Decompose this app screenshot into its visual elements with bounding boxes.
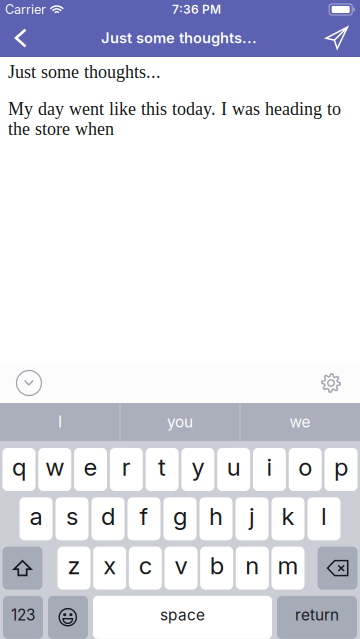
button[interactable]: r [110,448,143,491]
staticText: f [139,502,148,531]
staticText: I [58,413,62,431]
staticText: My day went like this today. I was headi… [8,99,341,139]
button[interactable]: b [200,547,233,590]
staticText: v [174,551,187,580]
staticText: j [249,502,255,531]
button[interactable]: z [57,547,90,590]
staticText: b [210,551,224,580]
button[interactable]: return [277,596,357,639]
button[interactable]: Settings [306,363,356,403]
button[interactable]: q [2,448,35,491]
button[interactable]: v [164,547,197,590]
staticText: d [101,502,115,531]
staticText: space [160,606,205,624]
staticText: h [209,502,223,531]
staticText: return [295,606,339,624]
staticText: n [245,551,259,580]
button[interactable]: g [163,497,196,540]
button[interactable]: s [55,497,88,540]
staticText: Just some thoughts... [101,29,257,47]
staticText: a [29,502,42,531]
button[interactable]: Hide keyboard [4,363,54,403]
staticText: t [158,452,166,481]
staticText: o [298,452,312,481]
staticText: w [45,452,64,481]
button[interactable]: a [19,497,52,540]
button[interactable]: e [74,448,107,491]
staticText: Just some thoughts... [8,62,161,82]
button[interactable]: l [307,497,340,540]
button[interactable]: h [199,497,232,540]
button[interactable]: 123 [3,596,43,639]
button[interactable]: i [253,448,286,491]
staticText: q [12,452,26,481]
button[interactable]: we [240,403,359,441]
staticText: e [84,452,98,481]
button[interactable]: j [235,497,268,540]
staticText: m [277,551,298,580]
staticText: p [334,452,348,481]
button[interactable]: c [129,547,162,590]
button[interactable]: Delete [317,547,357,590]
button[interactable]: d [91,497,124,540]
button[interactable]: t [146,448,179,491]
button[interactable]: x [93,547,126,590]
staticText: 123 [11,606,35,624]
staticText: y [191,452,204,481]
button[interactable]: you [120,403,239,441]
button[interactable]: u [217,448,250,491]
staticText: c [139,551,152,580]
button[interactable]: k [271,497,304,540]
button[interactable]: m [271,547,304,590]
button[interactable]: n [236,547,269,590]
button[interactable]: Send [318,19,356,57]
staticText: 7:36 PM [172,2,221,17]
button[interactable]: I [0,403,119,441]
staticText: s [66,502,78,531]
staticText: u [227,452,241,481]
staticText: g [173,502,187,531]
button[interactable]: p [324,448,357,491]
staticText: x [103,551,116,580]
button[interactable]: Emoji [48,596,88,639]
staticText: we [289,413,310,431]
staticText: k [281,502,294,531]
button[interactable]: f [127,497,160,540]
button[interactable]: Shift [2,547,42,590]
button[interactable]: Back [2,19,40,57]
button[interactable]: w [38,448,71,491]
button[interactable]: y [181,448,214,491]
staticText: i [266,452,272,481]
button[interactable]: o [289,448,322,491]
staticText: you [167,413,193,431]
button[interactable]: space [93,596,272,639]
staticText: l [321,502,327,531]
staticText: r [122,452,131,481]
staticText: Carrier [5,2,46,17]
staticText: z [67,551,80,580]
